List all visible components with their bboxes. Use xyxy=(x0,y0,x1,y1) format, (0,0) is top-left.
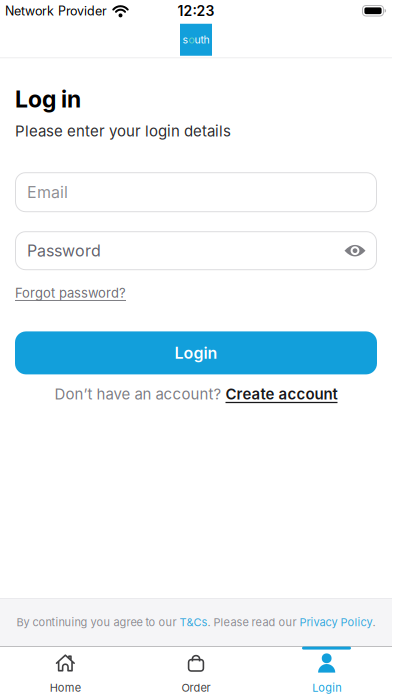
staticText: Password xyxy=(27,241,101,260)
staticText: Privacy Policy xyxy=(299,616,372,629)
staticText: Log in xyxy=(15,85,81,113)
button[interactable]: Create account xyxy=(225,385,337,403)
staticText: Order xyxy=(181,681,210,694)
staticText: uth xyxy=(194,33,209,46)
staticText: By continuing you agree to our xyxy=(16,616,179,629)
staticText: 12:23 xyxy=(177,2,214,19)
button[interactable]: Forgot password? xyxy=(15,285,126,301)
staticText: s xyxy=(182,33,188,46)
button[interactable]: Home xyxy=(0,651,131,694)
staticText: Don’t have an account? xyxy=(54,385,225,403)
staticText: o xyxy=(188,33,194,46)
button[interactable]: Login xyxy=(15,331,377,374)
button[interactable]: Order xyxy=(131,651,261,694)
staticText: Login xyxy=(174,343,217,363)
button[interactable]: Login xyxy=(261,651,392,694)
button[interactable]: T&Cs xyxy=(179,616,207,629)
staticText: Create account xyxy=(225,385,337,403)
button[interactable]: Privacy Policy xyxy=(299,616,372,629)
staticText: Please enter your login details xyxy=(15,122,231,140)
staticText: . Please read our xyxy=(207,616,299,629)
staticText: Home xyxy=(50,681,81,694)
button[interactable]: Show password xyxy=(344,243,366,258)
staticText: T&Cs xyxy=(179,616,207,629)
staticText: Forgot password? xyxy=(15,285,126,301)
staticText: Email xyxy=(27,182,68,202)
staticText: . xyxy=(372,616,375,629)
staticText: Network Provider xyxy=(5,3,107,18)
staticText: Login xyxy=(312,681,341,694)
